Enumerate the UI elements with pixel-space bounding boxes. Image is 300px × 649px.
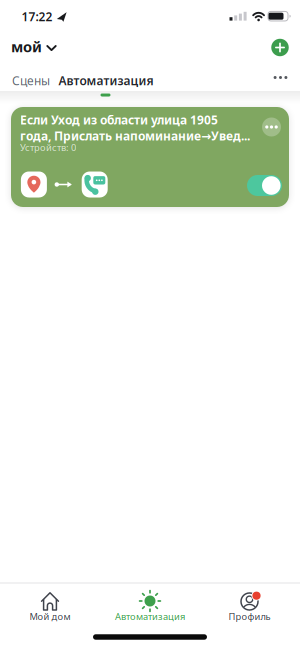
staticText: Устройств: 0	[20, 141, 76, 154]
button[interactable]: Ещё	[271, 68, 289, 86]
staticText: Мой дом	[29, 610, 70, 623]
button[interactable]: Добавить	[271, 39, 289, 56]
staticText: 17:22	[21, 8, 52, 24]
button[interactable]: Автоматизация	[100, 583, 200, 633]
button[interactable]: Профиль	[203, 583, 296, 633]
button[interactable]: Выбор дома	[11, 37, 81, 56]
button[interactable]: Мой дом	[3, 583, 97, 633]
button[interactable]: Сцены	[12, 72, 50, 88]
staticText: Автоматизация	[58, 72, 153, 88]
button[interactable]: Автоматизация	[58, 72, 153, 88]
staticText: мой	[11, 37, 42, 56]
button[interactable]: Включено	[247, 175, 282, 196]
staticText: Если Уход из области улица 1905 года, Пр…	[20, 112, 250, 144]
staticText: Сцены	[12, 72, 50, 88]
staticText: Автоматизация	[115, 610, 185, 623]
button[interactable]: Дополнительно	[262, 117, 281, 136]
staticText: Профиль	[228, 610, 270, 623]
button[interactable]: Если Уход из области улица 1905 года, Пр…	[11, 107, 289, 207]
